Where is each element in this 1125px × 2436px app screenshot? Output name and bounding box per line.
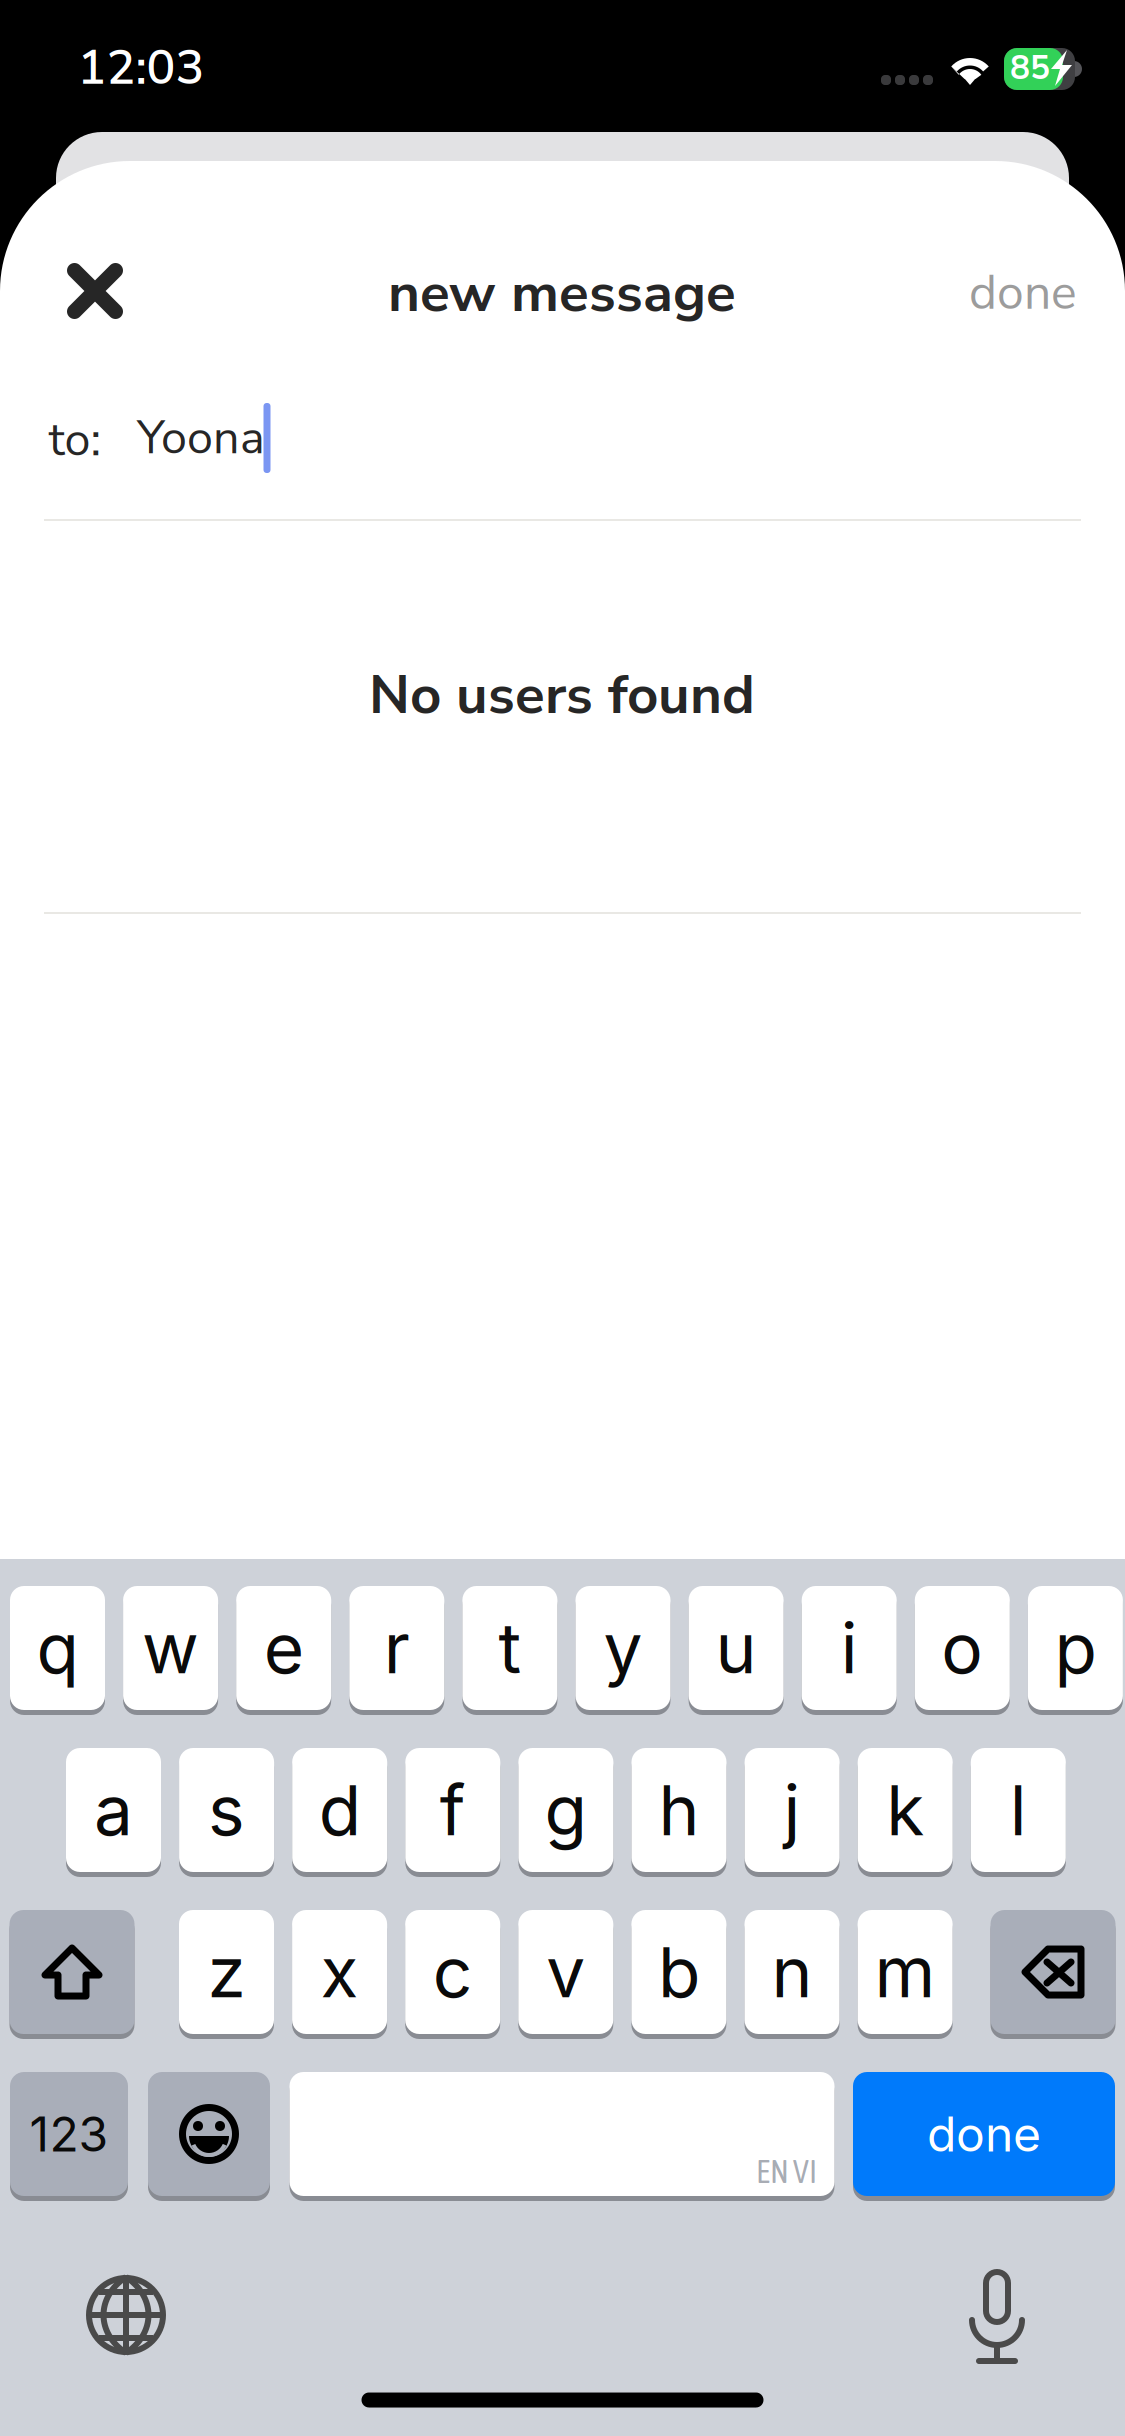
button[interactable]: Space xyxy=(289,2069,834,2198)
staticText: r xyxy=(384,1606,410,1690)
button[interactable]: m xyxy=(858,1907,953,2036)
button[interactable]: q xyxy=(10,1583,105,1712)
button[interactable]: c xyxy=(405,1907,500,2036)
staticText: k xyxy=(886,1768,924,1852)
button[interactable]: y xyxy=(575,1583,670,1712)
staticText: i xyxy=(841,1606,858,1690)
button[interactable]: u xyxy=(689,1583,784,1712)
button[interactable]: Emoji xyxy=(148,2069,270,2198)
staticText: done xyxy=(927,2105,1041,2163)
button[interactable]: k xyxy=(858,1745,953,1874)
staticText: p xyxy=(1054,1606,1096,1690)
staticText: z xyxy=(207,1930,245,2014)
button[interactable]: done xyxy=(969,260,1077,326)
staticText: y xyxy=(603,1606,642,1690)
staticText: a xyxy=(94,1768,133,1852)
button[interactable]: g xyxy=(518,1745,613,1874)
button[interactable]: p xyxy=(1028,1583,1123,1712)
staticText: h xyxy=(658,1768,699,1852)
staticText: e xyxy=(264,1606,304,1690)
staticText: Yoona xyxy=(137,406,265,470)
staticText: w xyxy=(142,1606,199,1690)
staticText: new message xyxy=(388,256,736,330)
staticText: EN VI xyxy=(756,2153,817,2190)
staticText: n xyxy=(771,1930,812,2014)
button[interactable]: r xyxy=(349,1583,444,1712)
staticText: v xyxy=(546,1930,585,2014)
staticText: d xyxy=(319,1768,361,1852)
button[interactable]: Change keyboard xyxy=(84,2273,168,2357)
staticText: 12:03 xyxy=(77,35,204,101)
button[interactable]: h xyxy=(631,1745,726,1874)
button[interactable]: t xyxy=(462,1583,557,1712)
staticText: m xyxy=(875,1930,936,2014)
button[interactable]: v xyxy=(518,1907,613,2036)
staticText: to: xyxy=(48,408,101,472)
button[interactable]: b xyxy=(631,1907,726,2036)
staticText: l xyxy=(1010,1768,1027,1852)
staticText: f xyxy=(440,1768,466,1852)
button[interactable]: n xyxy=(744,1907,839,2036)
button[interactable]: a xyxy=(66,1745,161,1874)
staticText: 85 xyxy=(1010,45,1050,91)
button[interactable]: Delete xyxy=(990,1907,1115,2036)
staticText: j xyxy=(784,1768,801,1852)
staticText: u xyxy=(716,1606,757,1690)
staticText: c xyxy=(433,1930,473,2014)
staticText: 123 xyxy=(29,2105,108,2163)
staticText: g xyxy=(544,1768,587,1852)
button[interactable]: i xyxy=(802,1583,897,1712)
button[interactable]: d xyxy=(292,1745,387,1874)
button[interactable]: o xyxy=(915,1583,1010,1712)
button[interactable]: w xyxy=(123,1583,218,1712)
staticText: t xyxy=(498,1606,521,1690)
button[interactable]: f xyxy=(405,1745,500,1874)
button[interactable]: e xyxy=(236,1583,331,1712)
button[interactable]: done xyxy=(853,2069,1115,2198)
button[interactable]: z xyxy=(179,1907,274,2036)
button[interactable]: Shift xyxy=(9,1907,134,2036)
staticText: s xyxy=(208,1768,245,1852)
staticText: done xyxy=(969,260,1077,326)
staticText: x xyxy=(321,1930,359,2014)
button[interactable]: l xyxy=(971,1745,1066,1874)
button[interactable]: j xyxy=(745,1745,840,1874)
button[interactable]: 123 xyxy=(10,2069,128,2198)
staticText: No users found xyxy=(369,658,755,732)
button[interactable]: x xyxy=(292,1907,387,2036)
button[interactable]: s xyxy=(179,1745,274,1874)
button[interactable]: Dictate xyxy=(967,2265,1027,2365)
staticText: q xyxy=(36,1606,78,1690)
button[interactable]: Close xyxy=(66,262,123,319)
staticText: o xyxy=(941,1606,983,1690)
staticText: b xyxy=(658,1930,700,2014)
